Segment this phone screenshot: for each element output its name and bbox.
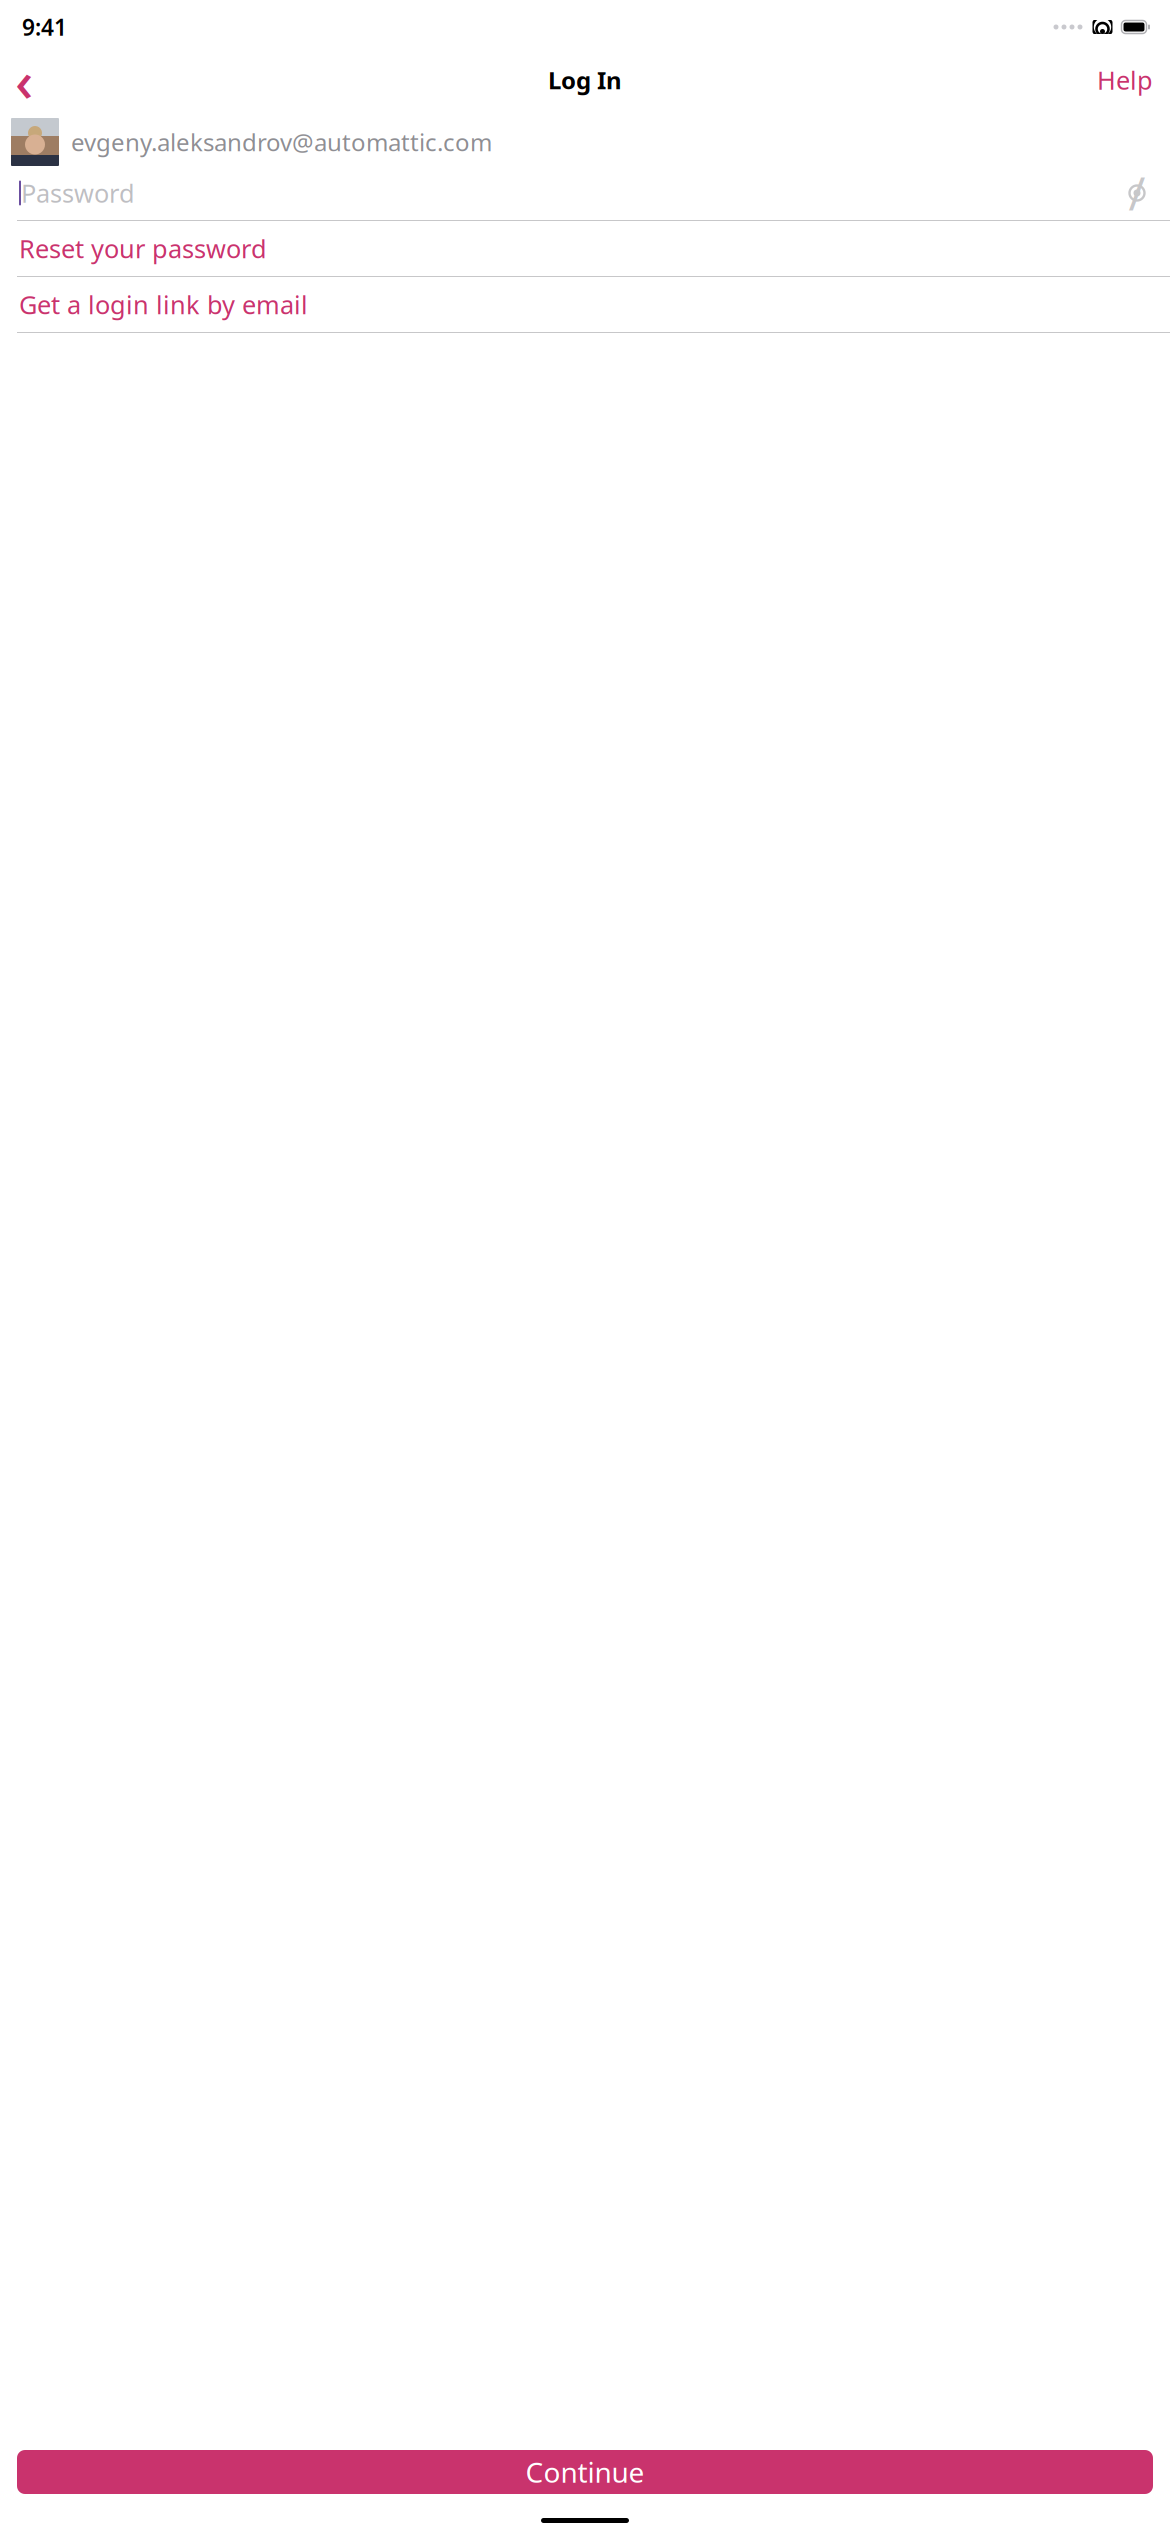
button[interactable]: Back	[2, 58, 46, 102]
button[interactable]: Reset your password	[0, 221, 1170, 276]
staticText: 9:41	[22, 12, 67, 42]
staticText: Continue	[525, 2453, 644, 2491]
staticText: ‹	[15, 43, 33, 117]
button[interactable]: Continue	[17, 2450, 1153, 2494]
staticText: Get a login link by email	[19, 288, 308, 321]
staticText: evgeny.aleksandrov@automattic.com	[71, 126, 492, 158]
button[interactable]: Get a login link by email	[0, 277, 1170, 332]
staticText: Log In	[548, 64, 622, 96]
staticText: Help	[1097, 63, 1153, 97]
button[interactable]: Help	[1089, 53, 1161, 107]
staticText: Reset your password	[19, 232, 267, 265]
button[interactable]: Show password	[1116, 175, 1158, 211]
staticText: /	[1128, 163, 1145, 223]
staticText: Password	[21, 176, 135, 210]
